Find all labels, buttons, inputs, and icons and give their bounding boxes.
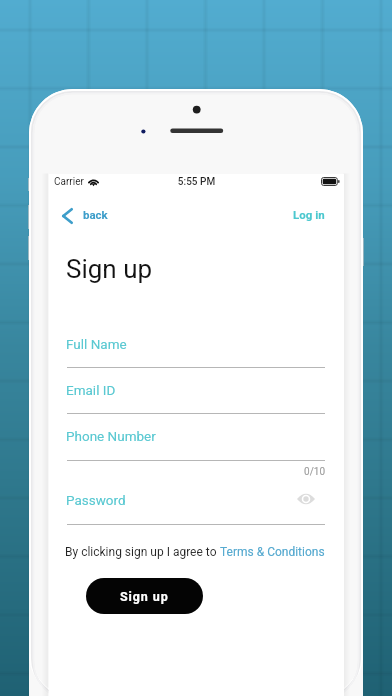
button[interactable]: Terms & Conditions <box>220 545 325 559</box>
staticText: By clicking sign up I agree to <box>65 545 220 559</box>
staticText: Password <box>66 492 126 508</box>
staticText: back <box>83 208 108 221</box>
staticText: 5:55 PM <box>49 176 344 188</box>
staticText: Sign up <box>120 589 169 604</box>
staticText: 0/10 <box>67 466 325 478</box>
button[interactable]: Log in <box>279 204 344 229</box>
staticText: Terms & Conditions <box>220 545 325 559</box>
staticText: Sign up <box>66 254 153 284</box>
staticText: Phone Number <box>66 428 156 444</box>
button[interactable]: Sign up <box>86 578 203 614</box>
staticText: Full Name <box>66 336 127 352</box>
staticText: Email ID <box>66 382 116 398</box>
button[interactable]: back <box>49 208 118 224</box>
staticText: Carrier <box>54 176 84 188</box>
button[interactable]: Show password <box>293 487 319 511</box>
staticText: Log in <box>293 208 325 221</box>
